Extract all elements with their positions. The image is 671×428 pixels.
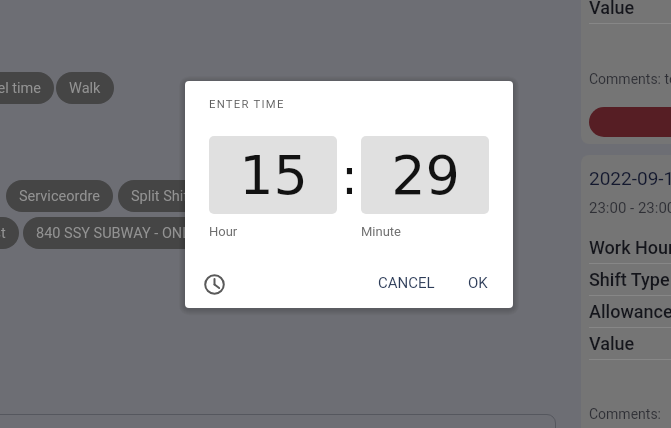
- staticText: 15: [239, 144, 308, 207]
- button[interactable]: Switch to clock input mode: [196, 266, 232, 302]
- button[interactable]: [589, 107, 671, 137]
- button[interactable]: Walk: [56, 72, 114, 104]
- button[interactable]: Rest: [0, 217, 19, 249]
- staticText: Split Shift: [131, 188, 194, 205]
- button[interactable]: 15: [209, 136, 337, 214]
- button[interactable]: Travel time: [0, 72, 54, 104]
- staticText: Rest: [0, 225, 6, 242]
- staticText: Value: [589, 333, 635, 354]
- staticText: ENTER TIME: [209, 98, 285, 111]
- staticText: Comments: test comment: [589, 71, 671, 87]
- staticText: Serviceordre: [19, 188, 100, 205]
- staticText: Travel time: [0, 80, 41, 97]
- button[interactable]: Split Shift: [118, 180, 207, 212]
- button[interactable]: Value: [589, 328, 671, 360]
- staticText: OK: [468, 274, 488, 292]
- button[interactable]: Work Hour: [589, 232, 671, 264]
- staticText: 840 SSY SUBWAY - ONLY: [36, 225, 198, 242]
- button[interactable]: Serviceordre: [6, 180, 113, 212]
- button[interactable]: 2022-09-18: [581, 155, 671, 428]
- staticText: Walk: [69, 80, 101, 97]
- button[interactable]: Allowance: [589, 296, 671, 328]
- staticText: Work Hour: [589, 237, 671, 258]
- button[interactable]: [0, 414, 556, 428]
- staticText: Allowance: [589, 301, 671, 322]
- staticText: 23:00 - 23:00: [589, 199, 671, 217]
- button[interactable]: Shift Type: [589, 264, 671, 296]
- staticText: 2022-09-18: [589, 167, 671, 189]
- staticText: CANCEL: [378, 274, 435, 292]
- staticText: Shift Type: [589, 269, 670, 290]
- staticText: Comments:: [589, 406, 662, 422]
- button[interactable]: 29: [361, 136, 489, 214]
- staticText: Hour: [209, 224, 238, 239]
- button[interactable]: Value: [581, 0, 671, 144]
- staticText: Minute: [361, 224, 402, 239]
- button[interactable]: OK: [460, 270, 496, 296]
- staticText: Value: [589, 0, 635, 18]
- button[interactable]: CANCEL: [370, 270, 443, 296]
- button[interactable]: 840 SSY SUBWAY - ONLY: [23, 217, 211, 249]
- staticText: 29: [391, 144, 460, 207]
- button[interactable]: Value: [589, 0, 671, 24]
- staticText: :: [341, 148, 358, 206]
